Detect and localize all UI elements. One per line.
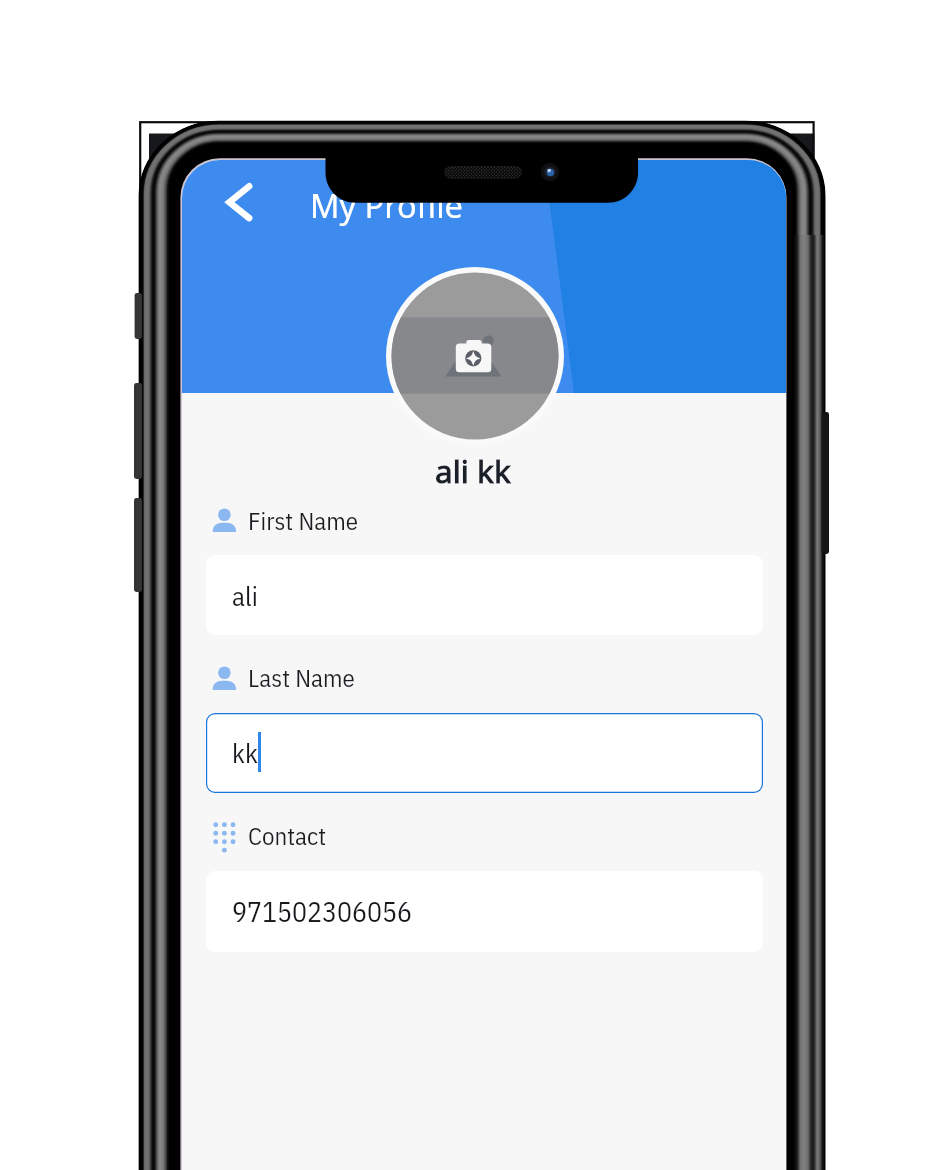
- button[interactable]: Change profile photo: [386, 267, 564, 445]
- button[interactable]: [209, 821, 384, 853]
- staticText: First Name: [248, 505, 358, 537]
- button[interactable]: Back: [206, 179, 253, 226]
- button[interactable]: [206, 713, 763, 793]
- button[interactable]: [209, 664, 384, 696]
- button[interactable]: [209, 506, 384, 538]
- staticText: ali: [232, 578, 258, 613]
- staticText: Contact: [248, 820, 327, 852]
- staticText: My Profile: [310, 183, 463, 227]
- staticText: ali kk: [435, 449, 511, 492]
- staticText: kk: [232, 735, 258, 770]
- staticText: 971502306056: [232, 894, 413, 930]
- staticText: Last Name: [248, 662, 355, 694]
- button[interactable]: [206, 871, 763, 952]
- button[interactable]: [206, 555, 763, 635]
